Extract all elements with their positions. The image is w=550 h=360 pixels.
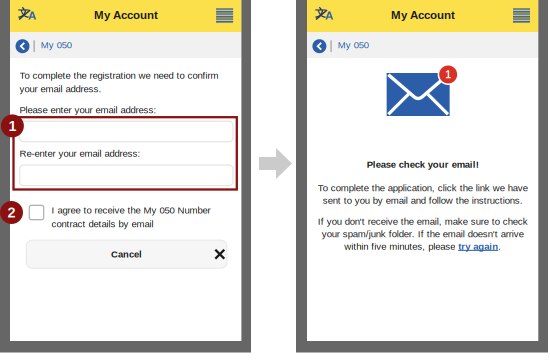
staticText: . [498,241,501,252]
staticText: 1 [445,69,451,80]
button[interactable]: I agree to receive the My 050 Number con… [29,205,204,235]
staticText: My Account [94,8,158,21]
staticText: Please enter your email address: [20,104,157,115]
button[interactable]: Translate [18,7,40,25]
staticText: Cancel [111,249,142,259]
staticText: Re-enter your email address: [20,148,141,159]
button[interactable]: Translate [315,7,337,25]
staticText: 1 [8,118,16,134]
staticText: To complete the application, click the l… [318,183,528,193]
staticText: 文 [315,6,326,20]
button[interactable]: Menu [513,8,530,23]
staticText: My Account [391,8,455,21]
staticText: your spam/junk folder. If the email does… [322,229,524,239]
staticText: My 050 [338,40,369,50]
button[interactable]: Back [15,39,29,53]
button[interactable]: My 050 [41,40,72,50]
staticText: My 050 [41,40,72,50]
staticText: I agree to receive the My 050 Number [52,205,211,215]
button[interactable]: Cancel [26,240,227,268]
staticText: 文 [18,6,29,20]
staticText: A [28,9,36,22]
staticText: sent to you by email and follow the inst… [323,195,523,206]
button[interactable]: try again [458,241,498,252]
button[interactable]: Back [312,39,326,53]
staticText: try again [458,241,498,252]
staticText: contract details by email [52,218,154,229]
staticText: To complete the registration we need to … [20,70,219,81]
button[interactable]: My 050 [338,40,369,50]
staticText: within five minutes, please [344,241,458,252]
staticText: If you don't receive the email, make sur… [318,216,528,227]
button[interactable]: Menu [216,8,233,23]
staticText: A [325,9,333,22]
staticText: Please check your email! [367,159,479,170]
staticText: your email address. [20,83,102,94]
staticText: 2 [7,204,15,221]
